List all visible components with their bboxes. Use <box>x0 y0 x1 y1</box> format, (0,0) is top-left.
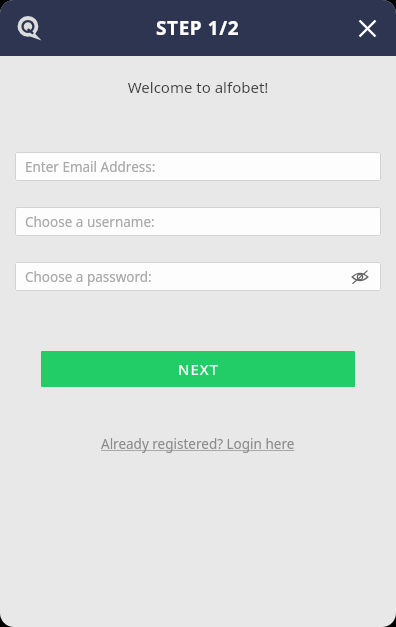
button[interactable]: Choose a username: <box>15 207 381 236</box>
staticText: Enter Email Address: <box>25 158 371 176</box>
button[interactable]: Already registered? Login here <box>95 431 301 457</box>
staticText: Welcome to alfobet! <box>0 77 396 97</box>
staticText: NEXT <box>178 359 219 379</box>
staticText: Choose a password: <box>25 268 349 286</box>
button[interactable]: Enter Email Address: <box>15 152 381 181</box>
button[interactable]: Close <box>348 9 386 47</box>
staticText: Already registered? Login here <box>101 435 295 453</box>
staticText: STEP 1/2 <box>156 15 240 41</box>
staticText: Choose a username: <box>25 213 371 231</box>
button[interactable]: Choose a password: <box>15 262 381 291</box>
button[interactable]: NEXT <box>41 351 355 387</box>
button[interactable]: Show password <box>349 266 371 288</box>
button[interactable]: App logo <box>12 11 46 45</box>
